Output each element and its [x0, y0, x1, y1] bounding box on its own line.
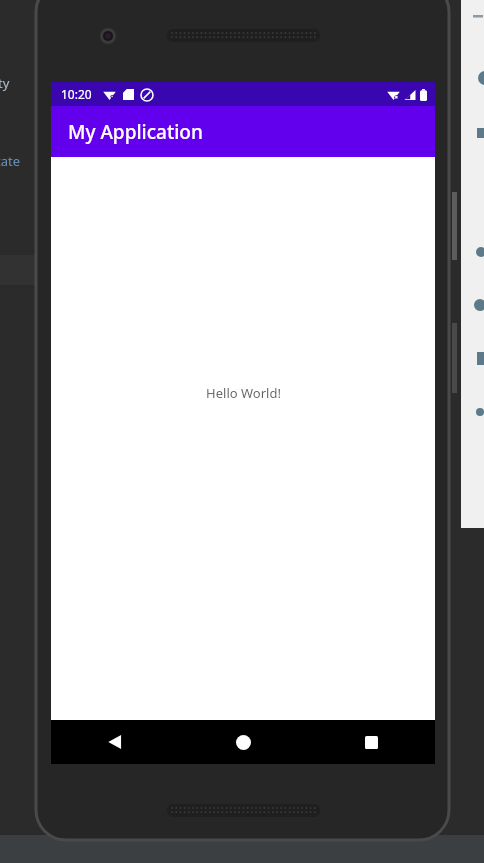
staticText: Hello World! [206, 384, 281, 402]
staticText: ty [0, 74, 10, 92]
button[interactable]: My Application [51, 106, 435, 157]
staticText: 10:20 [61, 86, 92, 102]
button[interactable]: Back [51, 720, 179, 764]
button[interactable]: Home [179, 720, 307, 764]
staticText: tate [0, 152, 21, 170]
button[interactable]: Recent apps [307, 720, 435, 764]
staticText: My Application [68, 119, 203, 145]
